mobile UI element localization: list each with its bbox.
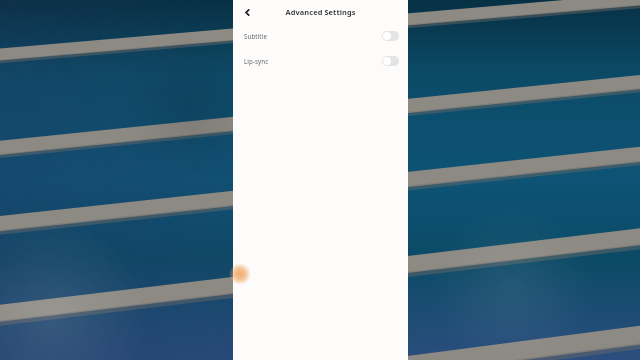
button[interactable]: Subtitle [233,24,408,48]
button[interactable]: Lip-sync [233,49,408,73]
staticText: Advanced Settings [233,7,408,17]
button[interactable]: Back [239,4,255,20]
staticText: Lip-sync [244,57,269,65]
staticText: Subtitle [244,32,267,40]
